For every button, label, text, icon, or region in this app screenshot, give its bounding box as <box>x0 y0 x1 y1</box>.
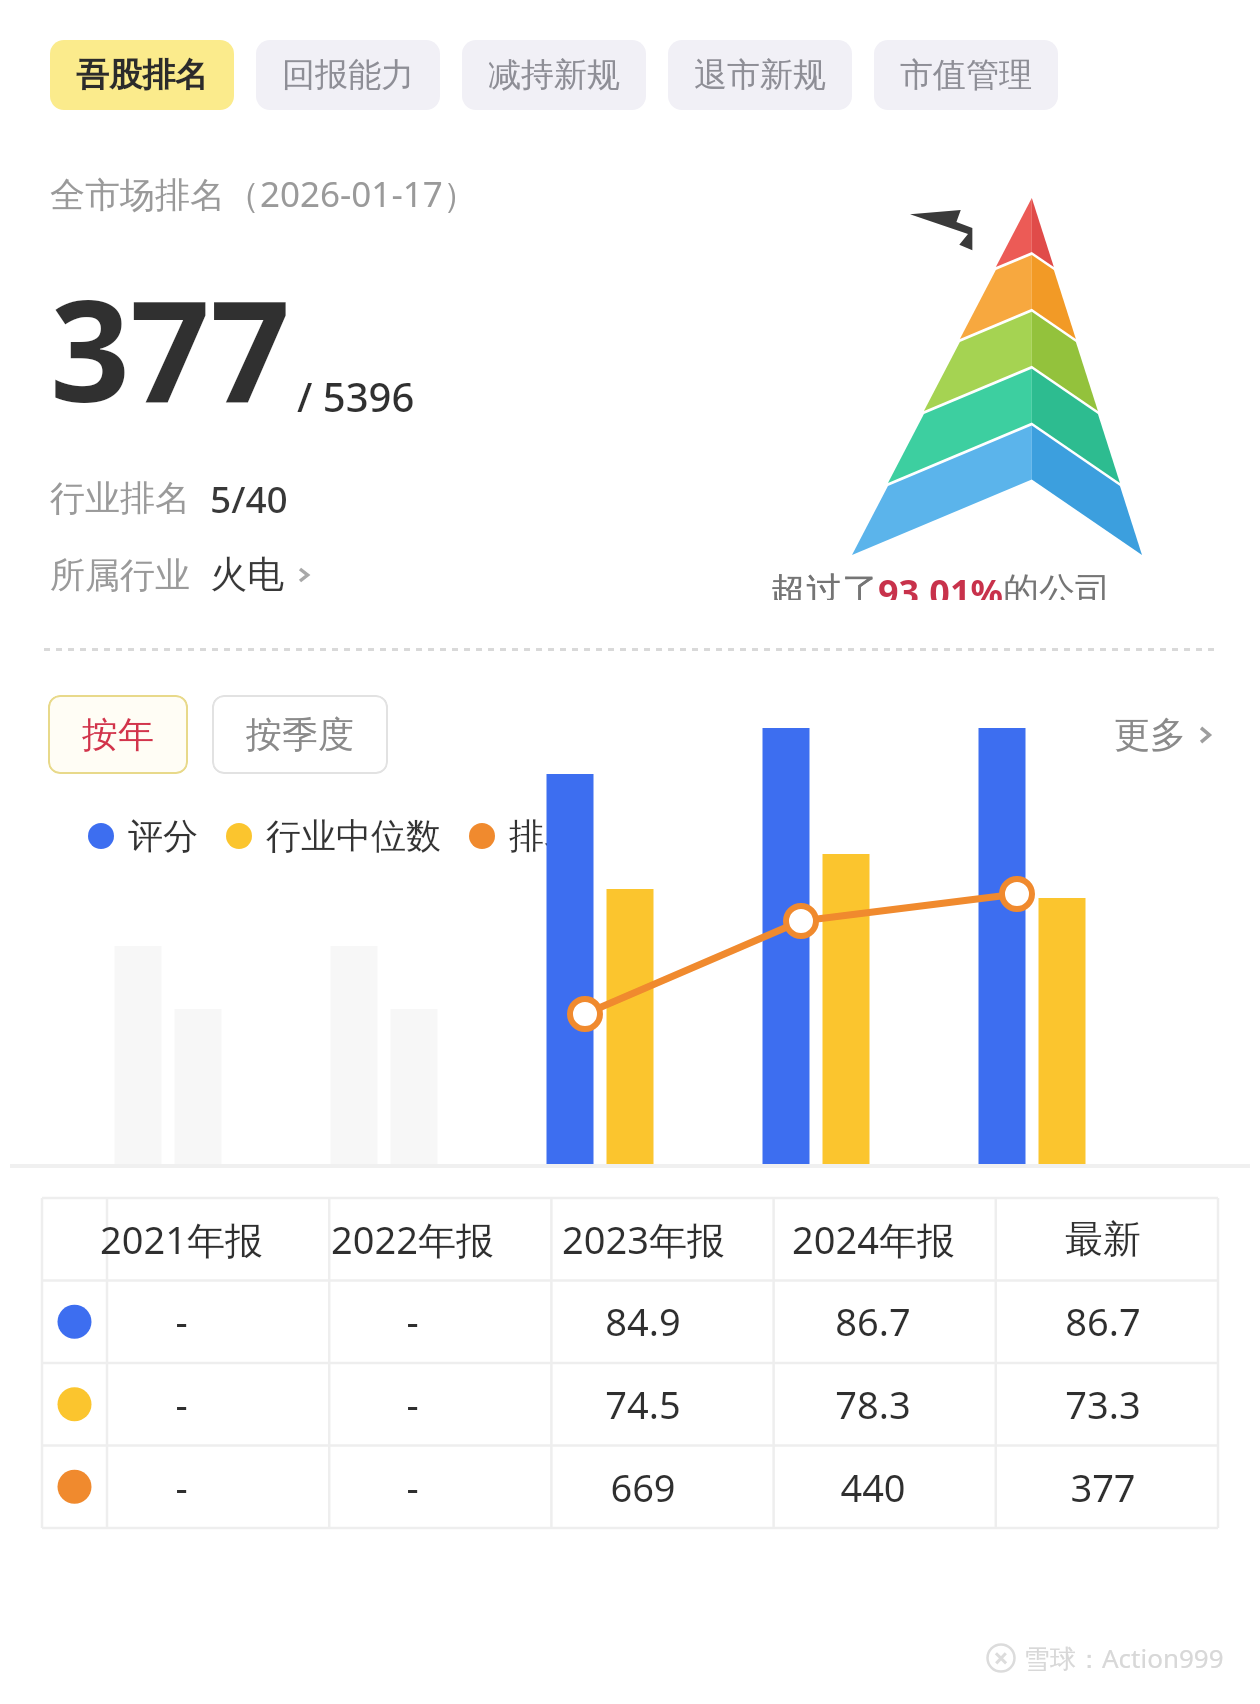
staticText: 84.9 <box>605 1295 681 1347</box>
staticText: 86.7 <box>835 1295 911 1347</box>
staticText: 全市场排名（2026-01-17） <box>50 170 478 218</box>
staticText: 超过了 <box>770 568 878 600</box>
staticText: - <box>175 1378 188 1430</box>
button[interactable]: 退市新规 <box>668 40 852 110</box>
staticText: 评分 <box>128 814 198 858</box>
staticText: 86.7 <box>1065 1295 1141 1347</box>
staticText: 377 <box>1070 1461 1136 1513</box>
staticText: 669 <box>610 1461 676 1513</box>
staticText: 74.5 <box>605 1378 681 1430</box>
staticText: 按季度 <box>246 712 354 757</box>
staticText: 2023年报 <box>562 1213 725 1265</box>
button[interactable]: 吾股排名 <box>50 40 234 110</box>
button[interactable]: 按年 <box>48 695 188 774</box>
staticText: 2024年报 <box>792 1213 955 1265</box>
button[interactable]: 回报能力 <box>256 40 440 110</box>
staticText: 73.3 <box>1065 1378 1141 1430</box>
staticText: 减持新规 <box>488 54 620 96</box>
staticText: 排名 <box>509 814 579 858</box>
staticText: 更多 <box>1114 712 1186 757</box>
button[interactable]: 所属行业 <box>50 551 314 598</box>
staticText: 市值管理 <box>900 54 1032 96</box>
staticText: 93.01% <box>878 568 1003 600</box>
staticText: 2021年报 <box>100 1213 263 1265</box>
staticText: 回报能力 <box>282 54 414 96</box>
staticText: 行业排名 <box>50 476 190 520</box>
staticText: / 5396 <box>297 369 415 423</box>
staticText: 78.3 <box>835 1378 911 1430</box>
staticText: - <box>175 1461 188 1513</box>
staticText: 5/40 <box>210 473 288 523</box>
staticText: - <box>406 1461 419 1513</box>
button[interactable]: 减持新规 <box>462 40 646 110</box>
button[interactable]: 市值管理 <box>874 40 1058 110</box>
staticText: 吾股排名 <box>76 54 208 96</box>
staticText: - <box>406 1378 419 1430</box>
staticText: 行业中位数 <box>266 814 441 858</box>
staticText: 377 <box>50 252 291 443</box>
staticText: 440 <box>840 1461 906 1513</box>
staticText: 火电 <box>210 551 284 598</box>
button[interactable]: 按季度 <box>212 695 388 774</box>
button[interactable]: 更多 <box>1114 712 1216 757</box>
staticText: 退市新规 <box>694 54 826 96</box>
staticText: 超过了 <box>770 568 878 600</box>
staticText: 所属行业 <box>50 553 190 597</box>
staticText: 按年 <box>82 712 154 757</box>
staticText: - <box>175 1295 188 1347</box>
staticText: 的公司 <box>1003 568 1111 600</box>
staticText: 雪球：Action999 <box>1024 1640 1224 1676</box>
staticText: - <box>406 1295 419 1347</box>
staticText: 最新 <box>1065 1215 1141 1263</box>
staticText: 2022年报 <box>331 1213 494 1265</box>
